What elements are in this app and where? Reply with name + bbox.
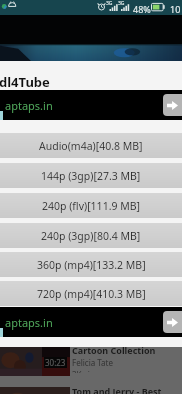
button[interactable]: Open advertisement [163,311,182,333]
button[interactable]: aptaps.in [0,307,182,337]
staticText: Audio(m4a)[40.8 MB] [39,139,143,153]
staticText: Cartoon Collection [72,344,156,356]
staticText: aptaps.in [5,315,53,330]
button[interactable]: 240p (flv)[111.9 MB] [0,193,182,218]
staticText: 240p (3gp)[80.4 MB] [41,229,141,243]
button[interactable]: Open advertisement [163,94,182,116]
staticText: aptaps.in [5,98,53,113]
staticText: dl4Tube [0,73,50,91]
staticText: 30:23 [45,357,66,368]
button[interactable]: Audio(m4a)[40.8 MB] [0,133,182,158]
staticText: Tom and Jerry - Best [72,385,162,394]
button[interactable]: aptaps.in [0,90,182,120]
staticText: 720p (mp4)[410.3 MB] [37,287,146,301]
staticText: 3K views [72,369,105,373]
staticText: 10 [170,3,181,15]
button[interactable]: 360p (mp4)[133.2 MB] [0,252,182,277]
staticText: 360p (mp4)[133.2 MB] [37,258,146,272]
staticText: 240p (flv)[111.9 MB] [42,199,140,213]
staticText: 48% [133,3,151,15]
staticText: 3G [118,0,125,7]
staticText: 144p (3gp)[27.3 MB] [41,169,141,183]
staticText: Felicia Tate [72,357,113,368]
button[interactable]: 240p (3gp)[80.4 MB] [0,223,182,248]
button[interactable]: 144p (3gp)[27.3 MB] [0,163,182,188]
staticText: 3G [106,0,113,7]
button[interactable]: 720p (mp4)[410.3 MB] [0,281,182,306]
